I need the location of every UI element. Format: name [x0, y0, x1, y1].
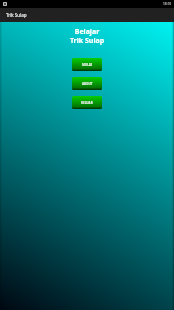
staticText: Belajar Trik Sulap [0, 27, 174, 45]
staticText: MULAI [82, 63, 93, 67]
button[interactable]: KELUAR [72, 96, 102, 109]
staticText: ABOUT [82, 82, 93, 86]
staticText: Trik Sulap [6, 12, 27, 18]
staticText: KELUAR [81, 101, 93, 105]
button[interactable]: ABOUT [72, 77, 102, 90]
staticText: 18:10 [163, 2, 172, 6]
other: Notification [3, 2, 7, 6]
button[interactable]: MULAI [72, 58, 102, 71]
